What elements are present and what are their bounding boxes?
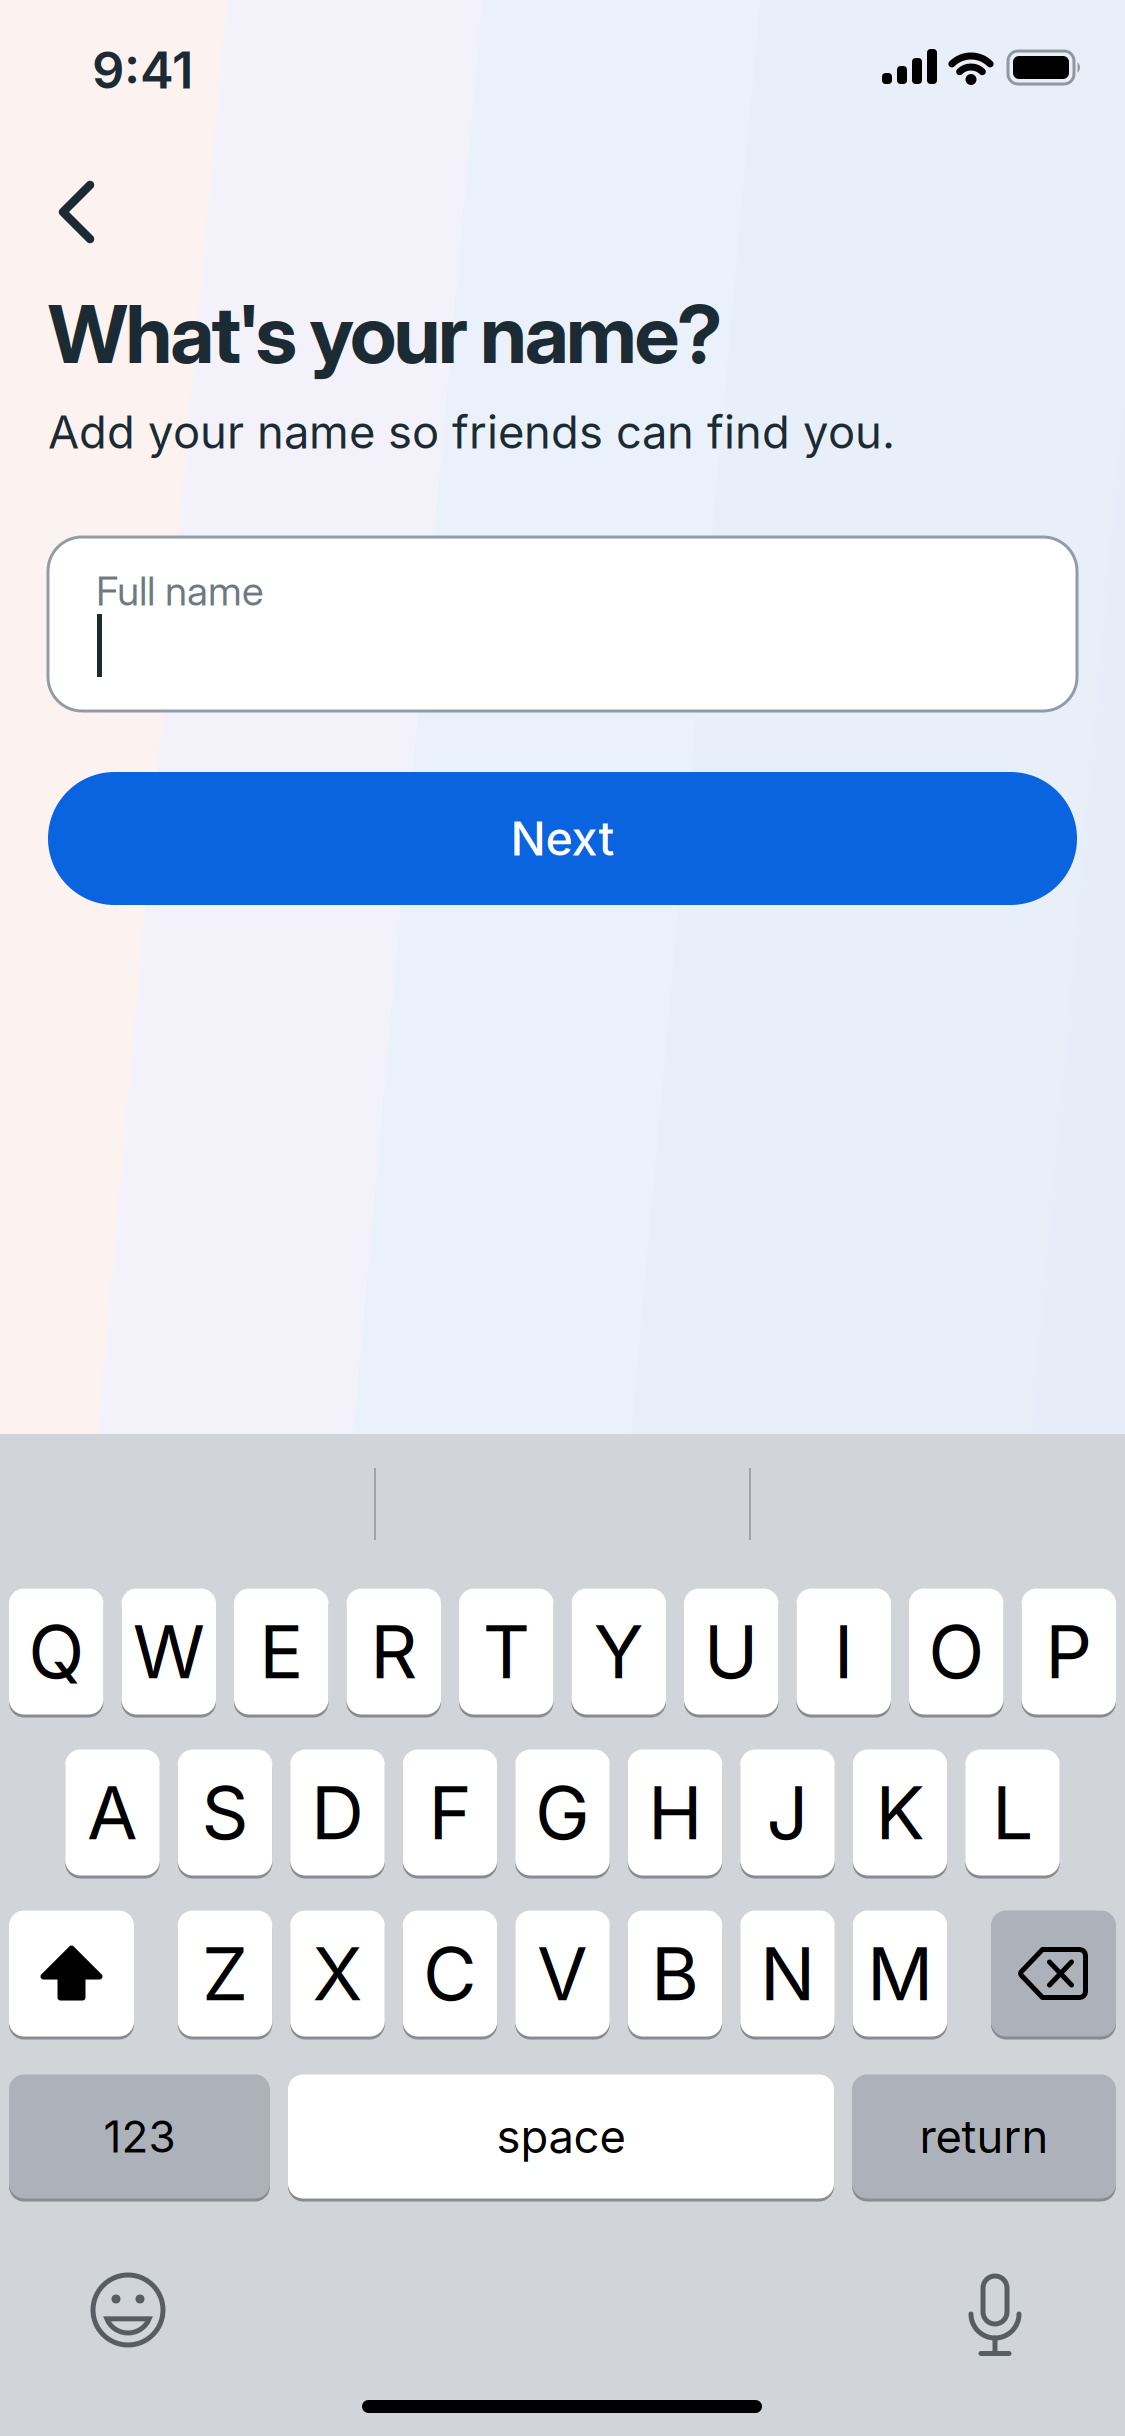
staticText: Next [510, 811, 614, 866]
staticText: G [535, 1769, 590, 1856]
staticText: U [704, 1608, 759, 1695]
staticText: L [992, 1769, 1033, 1856]
staticText: Full name [96, 567, 264, 615]
staticText: B [651, 1930, 699, 2017]
staticText: Y [594, 1608, 644, 1695]
staticText: P [1045, 1608, 1092, 1695]
staticText: What's your name? [48, 286, 722, 382]
staticText: D [311, 1769, 364, 1856]
staticText: Q [28, 1608, 84, 1695]
staticText: X [312, 1930, 362, 2017]
staticText: M [867, 1930, 933, 2017]
staticText: H [648, 1769, 702, 1856]
staticText: R [370, 1608, 417, 1695]
staticText: Add your name so friends can find you. [48, 405, 895, 459]
staticText: F [428, 1769, 471, 1856]
staticText: O [928, 1608, 984, 1695]
staticText: S [201, 1769, 248, 1856]
staticText: T [483, 1608, 530, 1695]
staticText: J [766, 1769, 808, 1856]
staticText: 9:41 [92, 40, 193, 100]
staticText: Z [202, 1930, 248, 2017]
staticText: I [834, 1608, 854, 1695]
staticText: W [133, 1608, 205, 1695]
staticText: C [423, 1930, 477, 2017]
staticText: 123 [103, 2110, 175, 2162]
staticText: K [875, 1769, 924, 1856]
staticText: space [496, 2110, 625, 2163]
staticText: return [919, 2110, 1048, 2163]
staticText: E [259, 1608, 303, 1695]
staticText: A [87, 1769, 138, 1856]
staticText: N [760, 1930, 815, 2017]
staticText: V [537, 1930, 588, 2017]
